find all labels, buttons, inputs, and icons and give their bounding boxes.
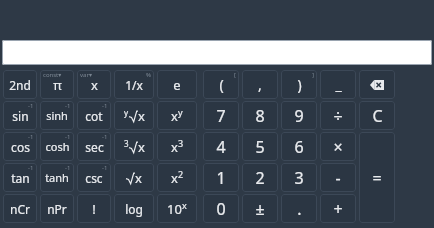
- staticText: π: [53, 76, 62, 94]
- button[interactable]: ]: [281, 70, 317, 99]
- staticText: .: [297, 198, 302, 220]
- button[interactable]: -1: [3, 163, 37, 192]
- staticText: x: [171, 138, 178, 156]
- staticText: x: [138, 138, 145, 156]
- staticText: x: [171, 107, 178, 125]
- staticText: sinh: [46, 108, 68, 123]
- button[interactable]: 8: [242, 101, 278, 130]
- button[interactable]: nPr: [40, 194, 74, 223]
- staticText: -: [335, 167, 341, 189]
- staticText: nPr: [47, 201, 67, 217]
- staticText: x: [182, 199, 187, 211]
- staticText: sec: [85, 139, 104, 155]
- staticText: -1: [102, 133, 108, 141]
- staticText: ±: [255, 198, 265, 220]
- button[interactable]: -1: [40, 101, 74, 130]
- button[interactable]: 6: [281, 132, 317, 161]
- button[interactable]: log: [114, 194, 154, 223]
- staticText: var▾: [80, 71, 92, 79]
- button[interactable]: C: [359, 101, 395, 130]
- button[interactable]: nCr: [3, 194, 37, 223]
- button[interactable]: -1: [3, 101, 37, 130]
- staticText: !: [92, 200, 96, 218]
- staticText: csc: [85, 170, 103, 186]
- button[interactable]: -1: [77, 163, 111, 192]
- staticText: ×: [333, 136, 343, 158]
- staticText: C: [372, 105, 383, 127]
- button[interactable]: %: [114, 70, 154, 99]
- staticText: 6: [294, 136, 304, 158]
- staticText: 10: [167, 200, 182, 218]
- staticText: -1: [28, 164, 34, 172]
- button[interactable]: -1: [40, 132, 74, 161]
- staticText: +: [333, 198, 343, 220]
- button[interactable]: 7: [203, 101, 239, 130]
- button[interactable]: 9: [281, 101, 317, 130]
- button[interactable]: -1: [40, 163, 74, 192]
- button[interactable]: !: [77, 194, 111, 223]
- staticText: cos: [11, 139, 30, 155]
- button[interactable]: 0: [203, 194, 239, 223]
- staticText: sin: [12, 108, 29, 124]
- button[interactable]: =: [359, 132, 395, 223]
- staticText: %: [146, 71, 151, 79]
- staticText: 2: [178, 168, 184, 180]
- button[interactable]: [2, 40, 432, 65]
- button[interactable]: x: [157, 101, 197, 130]
- staticText: 9: [294, 105, 304, 127]
- staticText: x: [91, 76, 98, 94]
- staticText: -1: [65, 133, 71, 141]
- button[interactable]: -1: [77, 101, 111, 130]
- staticText: ]: [312, 71, 314, 79]
- staticText: -1: [102, 102, 108, 110]
- button[interactable]: [: [203, 70, 239, 99]
- staticText: 1/x: [125, 77, 143, 93]
- button[interactable]: const▾: [40, 70, 74, 99]
- button[interactable]: -1: [3, 132, 37, 161]
- staticText: 8: [255, 105, 265, 127]
- button[interactable]: 2nd: [3, 70, 37, 99]
- staticText: e: [173, 76, 181, 94]
- staticText: tan: [11, 170, 30, 186]
- button[interactable]: ×: [320, 132, 356, 161]
- staticText: =: [372, 167, 382, 189]
- button[interactable]: y: [114, 101, 154, 130]
- button[interactable]: x: [114, 163, 154, 192]
- staticText: 3: [124, 138, 129, 149]
- staticText: 7: [216, 105, 226, 127]
- button[interactable]: -1: [77, 132, 111, 161]
- button[interactable]: Backspace: [359, 70, 395, 99]
- button[interactable]: var▾: [77, 70, 111, 99]
- button[interactable]: 1: [203, 163, 239, 192]
- button[interactable]: 3: [281, 163, 317, 192]
- staticText: const▾: [43, 71, 62, 79]
- button[interactable]: ±: [242, 194, 278, 223]
- button[interactable]: e: [157, 70, 197, 99]
- staticText: -1: [65, 164, 71, 172]
- button[interactable]: x: [157, 163, 197, 192]
- staticText: (: [219, 75, 224, 94]
- staticText: -1: [65, 102, 71, 110]
- button[interactable]: 5: [242, 132, 278, 161]
- button[interactable]: x: [157, 132, 197, 161]
- button[interactable]: 3: [114, 132, 154, 161]
- button[interactable]: .: [281, 194, 317, 223]
- staticText: nCr: [10, 201, 30, 217]
- staticText: _: [335, 75, 342, 94]
- staticText: cot: [85, 108, 103, 124]
- staticText: 3: [294, 167, 304, 189]
- button[interactable]: ÷: [320, 101, 356, 130]
- staticText: 3: [178, 137, 184, 149]
- button[interactable]: 10: [157, 194, 197, 223]
- button[interactable]: -: [320, 163, 356, 192]
- button[interactable]: 4: [203, 132, 239, 161]
- button[interactable]: +: [320, 194, 356, 223]
- button[interactable]: _: [320, 70, 356, 99]
- staticText: -1: [102, 164, 108, 172]
- button[interactable]: 2: [242, 163, 278, 192]
- staticText: y: [124, 107, 129, 118]
- button[interactable]: ,: [242, 70, 278, 99]
- staticText: 4: [216, 136, 226, 158]
- staticText: x: [135, 169, 142, 187]
